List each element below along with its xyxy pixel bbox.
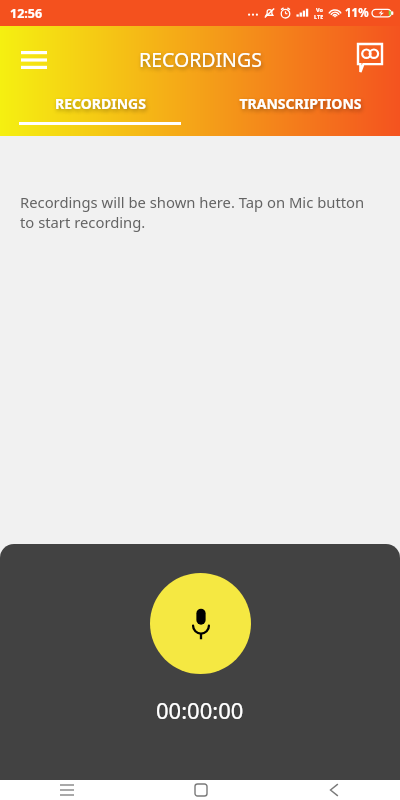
button[interactable]: Back <box>267 780 400 800</box>
button[interactable]: Recent apps <box>0 780 134 800</box>
button[interactable]: Open navigation menu <box>12 38 56 82</box>
staticText: LTE <box>314 13 324 20</box>
button[interactable]: Start recording <box>150 573 251 674</box>
button[interactable]: TRANSCRIPTIONS <box>200 94 400 136</box>
button[interactable]: RECORDINGS <box>0 94 200 136</box>
staticText: RECORDINGS <box>139 46 262 73</box>
button[interactable]: Home <box>134 780 267 800</box>
staticText: 00:00:00 <box>156 695 244 725</box>
button[interactable]: Voicemail <box>348 36 392 80</box>
staticText: 11% <box>345 5 369 21</box>
staticText: Recordings will be shown here. Tap on Mi… <box>20 192 382 233</box>
staticText: TRANSCRIPTIONS <box>239 94 362 113</box>
staticText: RECORDINGS <box>55 94 146 113</box>
staticText: 12:56 <box>10 5 43 22</box>
staticText: Vo <box>316 6 323 13</box>
